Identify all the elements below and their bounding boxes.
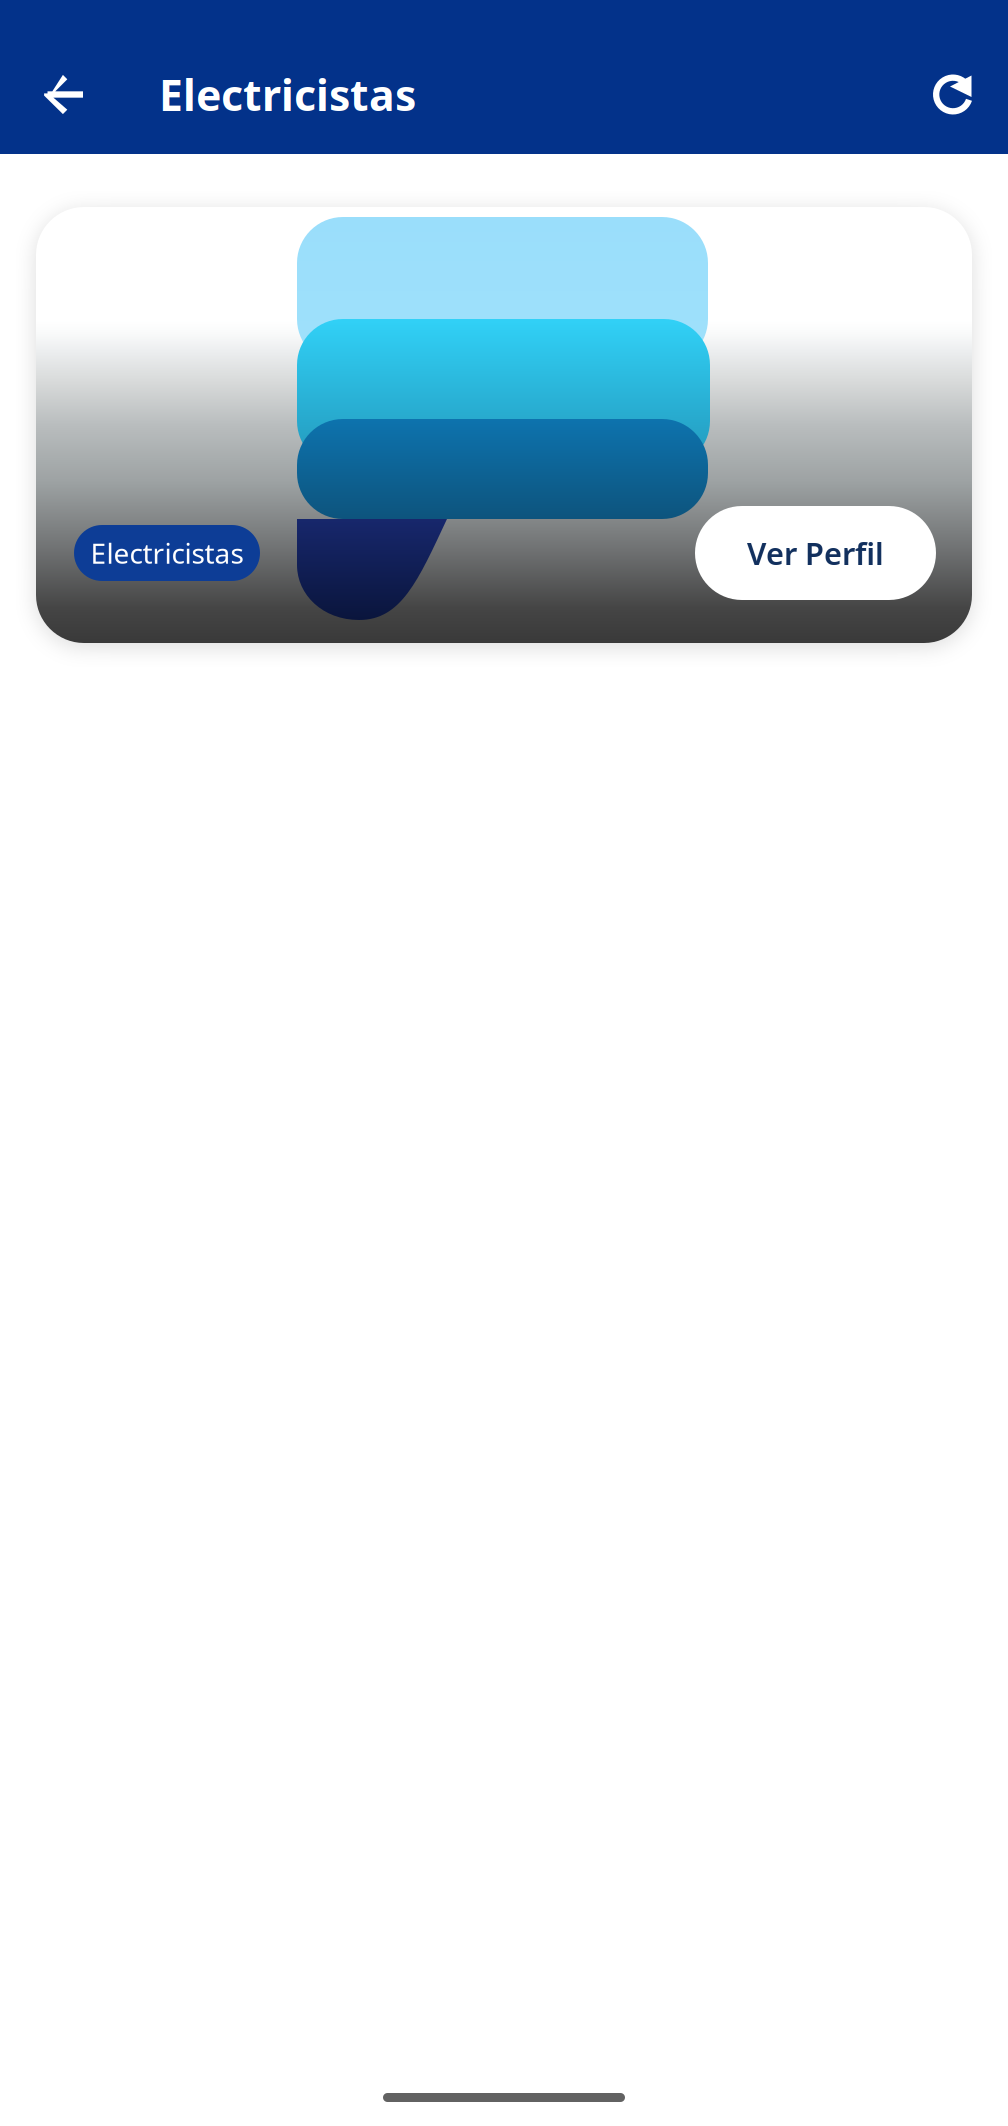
- staticText: Ver Perfil: [747, 533, 884, 573]
- button[interactable]: Back: [12, 35, 115, 154]
- button[interactable]: Ver Perfil: [695, 506, 936, 600]
- button[interactable]: Refresh: [903, 35, 1006, 154]
- staticText: Electricistas: [90, 534, 243, 572]
- staticText: Electricistas: [159, 66, 416, 123]
- button[interactable]: Electricistas: [74, 525, 260, 581]
